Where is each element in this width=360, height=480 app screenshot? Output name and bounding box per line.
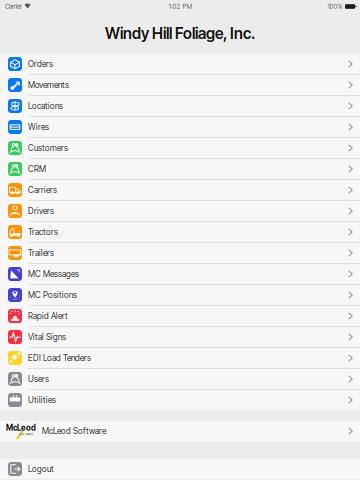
button[interactable]: McLeod <box>0 421 360 441</box>
staticText: Logout <box>28 464 54 474</box>
staticText: Orders <box>28 59 53 69</box>
staticText: SOFTWARE <box>19 433 33 436</box>
staticText: Movements <box>28 80 69 90</box>
button[interactable]: MC Positions <box>0 285 360 305</box>
button[interactable]: Tractors <box>0 222 360 242</box>
button[interactable]: Trailers <box>0 243 360 263</box>
button[interactable]: Rapid Alert <box>0 306 360 326</box>
button[interactable]: Wires <box>0 117 360 137</box>
staticText: MC Positions <box>28 290 77 300</box>
staticText: 1:02 PM <box>168 3 191 10</box>
staticText: Windy Hill Foliage, Inc. <box>105 24 255 43</box>
button[interactable]: Users <box>0 369 360 389</box>
button[interactable]: Customers <box>0 138 360 158</box>
button[interactable]: Drivers <box>0 201 360 221</box>
button[interactable]: Utilities <box>0 390 360 410</box>
button[interactable]: EDI Load Tenders <box>0 348 360 368</box>
staticText: MC Messages <box>28 269 79 279</box>
staticText: Wires <box>28 122 49 132</box>
button[interactable]: CRM <box>0 159 360 179</box>
button[interactable]: Locations <box>0 96 360 116</box>
staticText: Rapid Alert <box>28 311 68 321</box>
button[interactable]: Vital Signs <box>0 327 360 347</box>
staticText: Drivers <box>28 206 54 216</box>
staticText: 100% <box>327 3 342 10</box>
staticText: Utilities <box>28 395 56 405</box>
button[interactable]: Logout <box>0 459 360 479</box>
staticText: McLeod Software <box>42 426 106 436</box>
staticText: Vital Signs <box>28 332 66 342</box>
staticText: EDI Load Tenders <box>28 353 91 363</box>
staticText: Locations <box>28 101 63 111</box>
staticText: CRM <box>28 164 46 174</box>
button[interactable]: Movements <box>0 75 360 95</box>
button[interactable]: Orders <box>0 54 360 74</box>
staticText: Carrier <box>5 3 22 10</box>
staticText: Tractors <box>28 227 58 237</box>
staticText: Carriers <box>28 185 57 195</box>
staticText: Customers <box>28 143 68 153</box>
button[interactable]: Carriers <box>0 180 360 200</box>
staticText: Trailers <box>28 248 54 258</box>
button[interactable]: MC Messages <box>0 264 360 284</box>
staticText: Users <box>28 374 49 384</box>
staticText: McLeod <box>6 423 36 433</box>
